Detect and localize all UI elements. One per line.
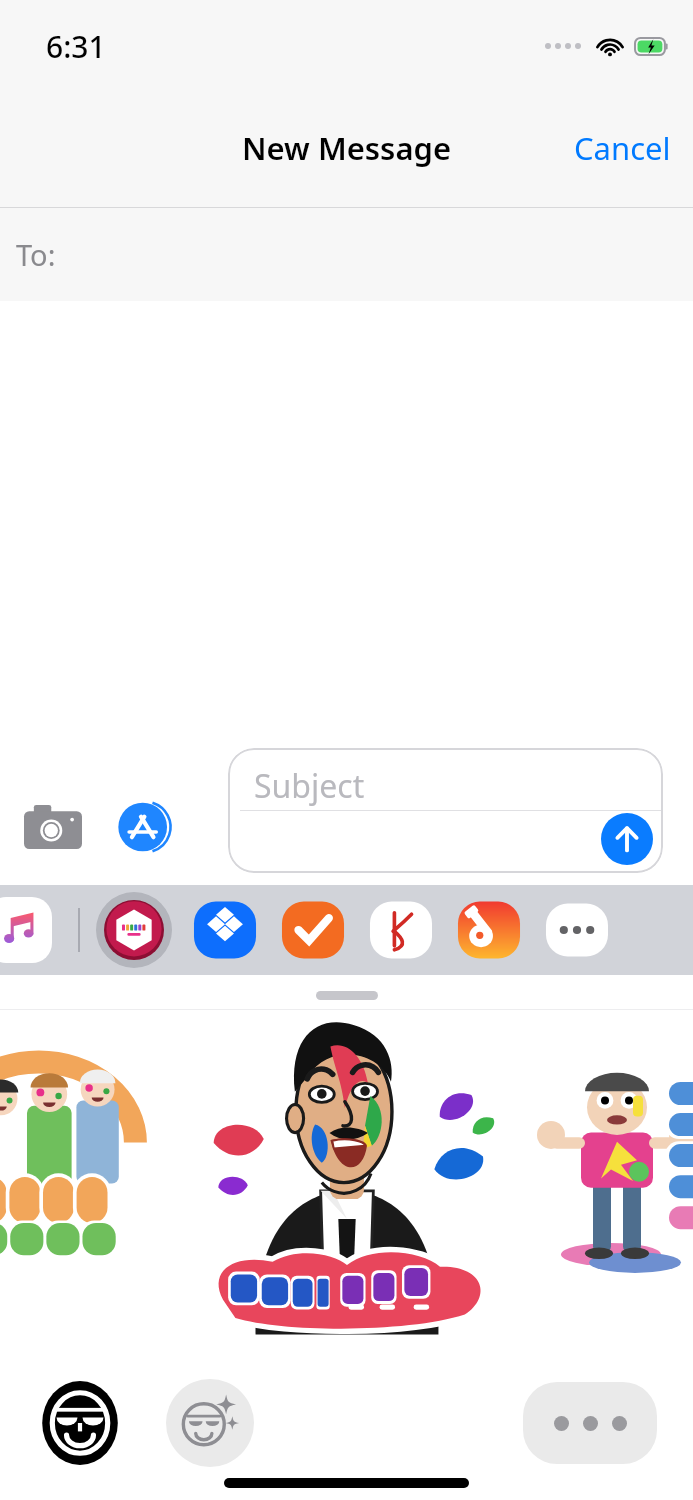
button[interactable]: Send <box>601 813 653 865</box>
button[interactable]: Tasks <box>280 897 346 963</box>
button[interactable]: Apps <box>110 792 180 862</box>
button[interactable]: Memoji effects <box>166 1379 254 1467</box>
staticText: New Message <box>242 127 452 169</box>
button[interactable]: Cancel <box>552 109 693 187</box>
staticText: Subject <box>254 764 365 808</box>
button[interactable]: Subject <box>228 748 663 873</box>
button[interactable]: Dropbox <box>192 897 258 963</box>
button[interactable]: More <box>544 897 610 963</box>
button[interactable]: Stickers <box>36 1379 124 1467</box>
button[interactable]: Music <box>0 897 52 963</box>
button[interactable]: Geela sticker <box>545 1059 693 1289</box>
button[interactable]: Stickers for Fun <box>96 892 172 968</box>
button[interactable]: Camera <box>18 792 88 862</box>
button[interactable]: More <box>523 1382 657 1464</box>
button[interactable] <box>316 991 378 1000</box>
button[interactable]: GarageBand <box>456 897 522 963</box>
button[interactable]: Bhang Connection sticker <box>0 1039 148 1269</box>
staticText: Cancel <box>574 127 671 169</box>
button[interactable]: K app <box>368 897 434 963</box>
button[interactable]: Holi LLB sticker <box>192 1011 502 1341</box>
staticText: 6:31 <box>46 26 106 67</box>
button[interactable]: To: <box>0 208 693 301</box>
staticText: To: <box>16 235 56 274</box>
